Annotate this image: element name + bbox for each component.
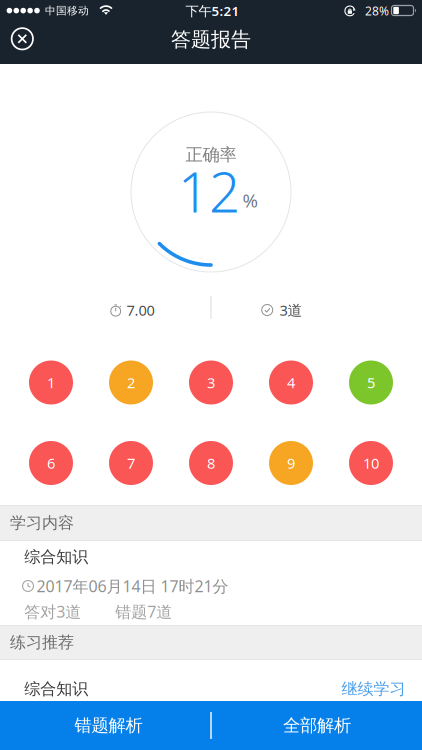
- button[interactable]: 错题解析: [3, 701, 213, 750]
- button[interactable]: 题目6: [29, 441, 73, 485]
- button[interactable]: 关闭: [5, 22, 39, 56]
- staticText: 学习内容: [10, 513, 74, 533]
- staticText: 7: [127, 453, 135, 473]
- button[interactable]: 综合知识: [0, 660, 422, 701]
- staticText: 继续学习: [341, 679, 405, 699]
- staticText: 中国移动: [45, 4, 89, 17]
- button[interactable]: 题目2: [109, 360, 153, 404]
- button[interactable]: 题目4: [269, 360, 313, 404]
- staticText: 正确率: [185, 144, 236, 165]
- staticText: 全部解析: [283, 715, 351, 736]
- button[interactable]: 题目9: [269, 441, 313, 485]
- staticText: 2: [127, 373, 135, 392]
- staticText: 综合知识: [24, 679, 88, 699]
- button[interactable]: 题目8: [189, 441, 233, 485]
- staticText: 4: [287, 373, 295, 392]
- staticText: 错题解析: [74, 715, 142, 736]
- staticText: 28%: [365, 3, 389, 19]
- staticText: 3: [207, 373, 215, 392]
- staticText: 10: [363, 453, 379, 473]
- staticText: 2017年06月14日 17时21分: [36, 575, 228, 597]
- staticText: 6: [47, 453, 55, 473]
- staticText: 错题7道: [115, 601, 172, 622]
- staticText: 练习推荐: [10, 633, 74, 652]
- staticText: 1: [47, 373, 55, 392]
- button[interactable]: 题目7: [109, 441, 153, 485]
- staticText: 5: [367, 373, 375, 392]
- button[interactable]: 题目3: [189, 360, 233, 404]
- staticText: 7.00: [126, 300, 154, 320]
- staticText: 下午5:21: [185, 2, 239, 20]
- button[interactable]: 题目1: [29, 360, 73, 404]
- staticText: 综合知识: [24, 547, 88, 567]
- staticText: 答对3道: [24, 601, 81, 622]
- staticText: 12: [178, 155, 240, 228]
- staticText: 答题报告: [171, 27, 251, 52]
- staticText: 9: [287, 453, 295, 473]
- staticText: 3道: [279, 300, 302, 320]
- button[interactable]: 全部解析: [212, 701, 422, 750]
- staticText: 8: [207, 453, 215, 473]
- button[interactable]: 题目5: [349, 360, 393, 404]
- button[interactable]: 题目10: [349, 441, 393, 485]
- staticText: %: [242, 188, 258, 213]
